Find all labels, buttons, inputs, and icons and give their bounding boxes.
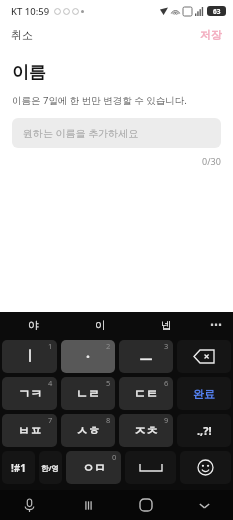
staticText: ㅂㅍ (18, 423, 42, 438)
button[interactable]: ㅣ (2, 340, 57, 373)
staticText: 이 (95, 319, 106, 332)
staticText: ㅡ (139, 348, 153, 366)
button[interactable]: Recents (59, 490, 117, 520)
staticText: 완료 (193, 387, 215, 401)
staticText: 5 (106, 378, 111, 388)
button[interactable]: 원하는 이름을 추가하세요 (12, 118, 221, 148)
button[interactable]: .,?! (177, 414, 231, 447)
button[interactable]: · (61, 340, 115, 373)
staticText: · (86, 347, 90, 366)
button[interactable]: ㄴㄹ (61, 377, 115, 410)
button[interactable]: ㅇㅁ (66, 451, 121, 484)
button[interactable]: 완료 (177, 377, 231, 410)
staticText: 3 (164, 341, 169, 351)
staticText: 0 (112, 452, 117, 462)
button[interactable]: 이 (67, 312, 133, 338)
staticText: 저장 (200, 28, 222, 42)
staticText: 이름은 7일에 한 번만 변경할 수 있습니다. (12, 94, 187, 107)
staticText: 0/30 (202, 155, 221, 167)
staticText: 한/영 (41, 463, 60, 473)
staticText: 취소 (11, 28, 33, 42)
button[interactable]: 취소 (0, 23, 44, 47)
staticText: 6 (164, 378, 169, 388)
button[interactable]: ㅅㅎ (61, 414, 115, 447)
staticText: ㄴㄹ (76, 386, 100, 401)
staticText: .,?! (197, 423, 212, 438)
button[interactable]: Space (125, 451, 176, 484)
staticText: !#1 (11, 461, 26, 475)
button[interactable]: !#1 (2, 451, 35, 484)
button[interactable]: Home (117, 490, 175, 520)
staticText: 4 (48, 378, 53, 388)
button[interactable]: Voice input (0, 490, 59, 520)
staticText: ㄷㅌ (134, 386, 158, 401)
button[interactable]: 야 (0, 312, 67, 338)
staticText: ㅈㅊ (134, 423, 158, 438)
staticText: ⋯ (210, 318, 222, 332)
staticText: 이름 (12, 62, 46, 83)
staticText: ㅇㅁ (82, 460, 106, 475)
staticText: ㅣ (23, 348, 37, 366)
button[interactable]: Backspace (177, 340, 231, 373)
button[interactable]: 한/영 (39, 451, 62, 484)
staticText: 1 (48, 341, 53, 351)
button[interactable]: ㄷㅌ (119, 377, 173, 410)
staticText: 야 (28, 319, 39, 332)
staticText: 원하는 이름을 추가하세요 (23, 126, 139, 140)
button[interactable]: 넵 (133, 312, 199, 338)
staticText: 2 (106, 341, 111, 351)
button[interactable]: More suggestions (199, 312, 233, 338)
button[interactable]: 저장 (189, 23, 233, 47)
staticText: 넵 (161, 319, 172, 332)
staticText: 9 (164, 415, 169, 425)
staticText: KT 10:59 (11, 5, 50, 18)
button[interactable]: Hide keyboard (175, 490, 233, 520)
button[interactable]: ㅡ (119, 340, 173, 373)
button[interactable]: ㅂㅍ (2, 414, 57, 447)
button[interactable]: ㄱㅋ (2, 377, 57, 410)
staticText: 7 (48, 415, 53, 425)
staticText: 63 (213, 7, 221, 16)
button[interactable]: ㅈㅊ (119, 414, 173, 447)
staticText: ㄱㅋ (18, 386, 42, 401)
button[interactable]: Emoji (180, 451, 231, 484)
staticText: ㅅㅎ (76, 423, 100, 438)
staticText: 8 (106, 415, 111, 425)
